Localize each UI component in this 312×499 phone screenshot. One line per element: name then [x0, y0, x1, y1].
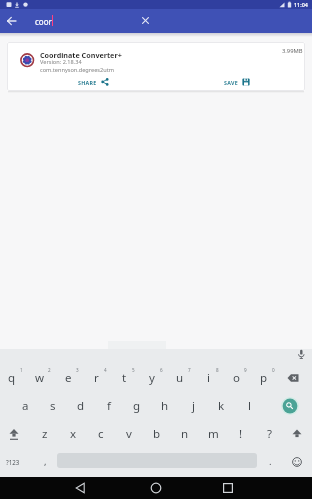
staticText: 5	[132, 367, 135, 373]
button[interactable]: p	[250, 364, 278, 392]
staticText: i	[207, 370, 210, 386]
button[interactable]: g	[123, 392, 151, 420]
staticText: k	[218, 398, 225, 414]
button[interactable]: y	[138, 364, 166, 392]
button[interactable]	[214, 74, 256, 89]
button[interactable]: r	[82, 364, 110, 392]
staticText: 4	[104, 367, 107, 373]
staticText: 2	[48, 367, 51, 373]
button[interactable]	[278, 364, 306, 392]
staticText: Version: 2.18.34	[40, 58, 82, 66]
button[interactable]: a	[11, 392, 39, 420]
button[interactable]: ?	[255, 420, 283, 448]
button[interactable]: n	[171, 420, 199, 448]
button[interactable]: v	[115, 420, 143, 448]
staticText: a	[22, 398, 29, 414]
button[interactable]: Coordinate Converter+	[7, 42, 305, 91]
button[interactable]	[216, 477, 240, 499]
staticText: u	[176, 370, 184, 386]
staticText: 11:04	[294, 1, 308, 8]
button[interactable]: k	[207, 392, 235, 420]
button[interactable]: c	[87, 420, 115, 448]
staticText: v	[126, 426, 132, 442]
button[interactable]: z	[31, 420, 59, 448]
button[interactable]	[67, 74, 112, 89]
staticText: w	[35, 370, 45, 386]
staticText: j	[192, 398, 195, 414]
button[interactable]: b	[143, 420, 171, 448]
staticText: SHARE	[78, 79, 97, 86]
button[interactable]	[68, 477, 92, 499]
staticText: g	[133, 398, 141, 414]
staticText: ?	[267, 426, 272, 442]
button[interactable]	[276, 392, 304, 420]
staticText: Coordinate Converter+	[40, 50, 122, 60]
staticText: l	[248, 398, 251, 414]
button[interactable]: u	[166, 364, 194, 392]
staticText: ,	[44, 455, 47, 468]
staticText: x	[70, 426, 77, 442]
staticText: SAVE	[224, 79, 238, 86]
staticText: 3	[76, 367, 79, 373]
staticText: 0	[272, 367, 275, 373]
button[interactable]: w	[26, 364, 54, 392]
button[interactable]: l	[235, 392, 263, 420]
button[interactable]: !	[227, 420, 255, 448]
staticText: coor	[35, 16, 52, 27]
staticText: 8	[216, 367, 219, 373]
button[interactable]: s	[39, 392, 67, 420]
staticText: f	[107, 398, 111, 414]
staticText: n	[181, 426, 189, 442]
staticText: h	[161, 398, 169, 414]
button[interactable]: t	[110, 364, 138, 392]
staticText: 3.99MB	[282, 47, 303, 55]
button[interactable]: q	[0, 364, 26, 392]
button[interactable]: f	[95, 392, 123, 420]
staticText: m	[208, 426, 219, 442]
button[interactable]: i	[194, 364, 222, 392]
staticText: d	[77, 398, 85, 414]
button[interactable]	[2, 11, 22, 31]
button[interactable]: j	[179, 392, 207, 420]
staticText: 7	[188, 367, 191, 373]
staticText: 1	[20, 367, 23, 373]
button[interactable]: d	[67, 392, 95, 420]
button[interactable]	[284, 448, 310, 476]
staticText: 6	[160, 367, 163, 373]
staticText: z	[42, 426, 48, 442]
button[interactable]: o	[222, 364, 250, 392]
button[interactable]: h	[151, 392, 179, 420]
button[interactable]: m	[199, 420, 227, 448]
button[interactable]	[283, 420, 311, 448]
staticText: p	[260, 370, 268, 386]
staticText: com.tennyson.degrees2utm	[40, 66, 114, 74]
staticText: o	[233, 370, 240, 386]
button[interactable]: x	[59, 420, 87, 448]
staticText: ?123	[6, 458, 20, 466]
button[interactable]: e	[54, 364, 82, 392]
staticText: r	[94, 370, 99, 386]
button[interactable]: ?123	[0, 448, 26, 476]
staticText: e	[65, 370, 72, 386]
staticText: t	[122, 370, 127, 386]
staticText: .	[269, 455, 272, 468]
staticText: 9	[244, 367, 247, 373]
staticText: q	[8, 370, 16, 386]
staticText: y	[149, 370, 155, 386]
button[interactable]	[136, 10, 156, 30]
staticText: b	[153, 426, 161, 442]
button[interactable]	[144, 477, 168, 499]
button[interactable]	[0, 420, 28, 448]
staticText: s	[50, 398, 56, 414]
staticText: !	[239, 426, 243, 442]
staticText: c	[98, 426, 104, 442]
